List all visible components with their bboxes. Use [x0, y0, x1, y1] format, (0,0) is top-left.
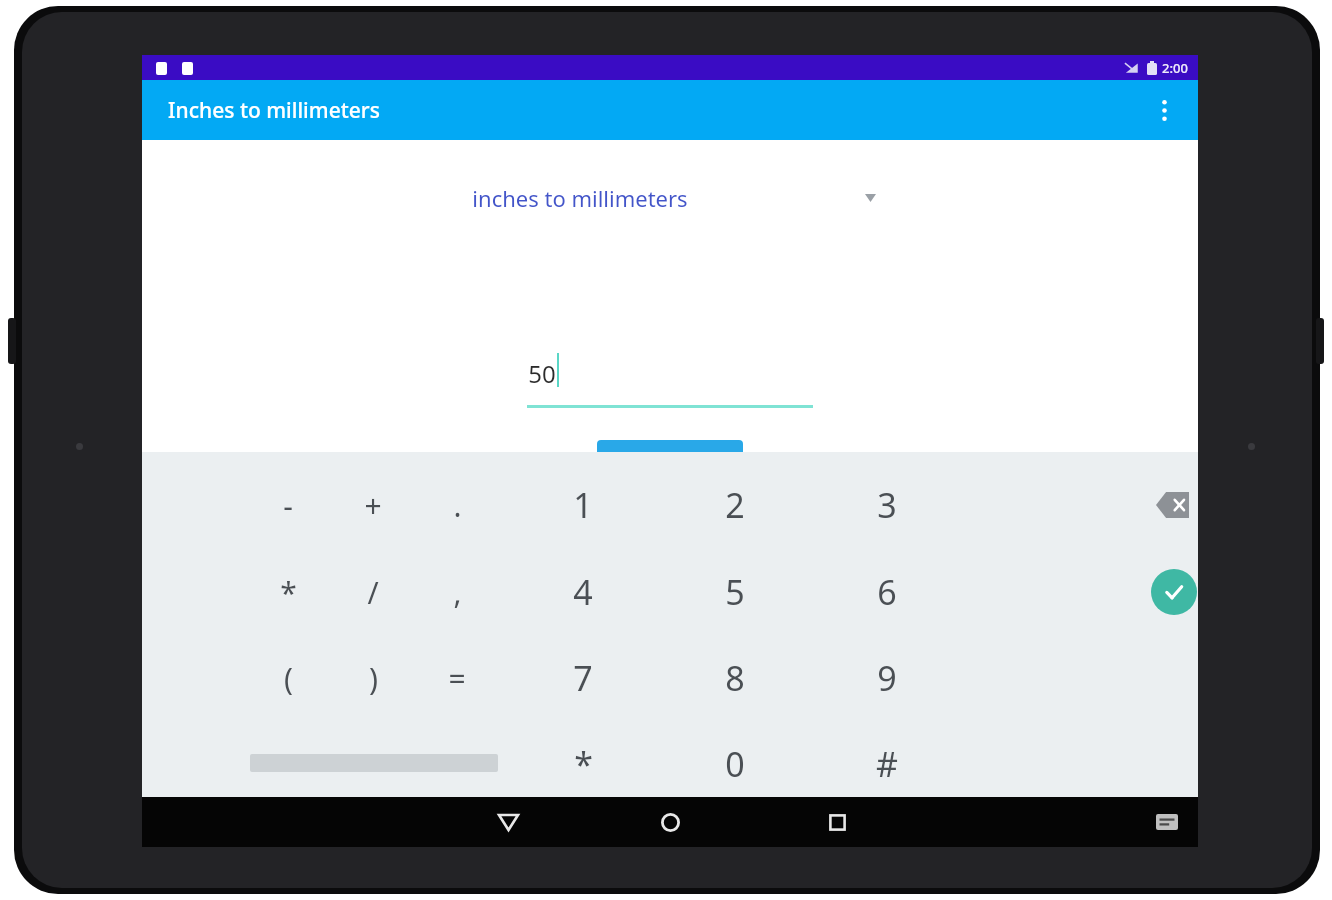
button[interactable]: - — [246, 472, 330, 538]
staticText: 7 — [573, 655, 593, 701]
button[interactable]: 5 — [693, 559, 777, 625]
button[interactable]: 0 — [693, 731, 777, 797]
staticText: 3 — [877, 482, 897, 528]
button[interactable]: ) — [331, 645, 415, 711]
staticText: * — [574, 741, 593, 787]
button[interactable]: 7 — [541, 645, 625, 711]
button[interactable]: # — [845, 731, 929, 797]
button[interactable]: 4 — [541, 559, 625, 625]
button[interactable]: 6 — [845, 559, 929, 625]
button[interactable]: Space — [250, 737, 498, 789]
button[interactable]: More options — [1140, 86, 1188, 134]
staticText: 9 — [877, 655, 897, 701]
staticText: 4 — [573, 569, 593, 615]
button[interactable]: 3 — [845, 472, 929, 538]
staticText: ) — [369, 658, 378, 699]
button[interactable]: Back — [472, 797, 544, 847]
staticText: 6 — [877, 569, 897, 615]
button[interactable]: + — [331, 472, 415, 538]
staticText: 2 — [725, 482, 745, 528]
button[interactable]: * — [541, 731, 625, 797]
staticText: Inches to millimeters — [168, 96, 380, 125]
staticText: = — [448, 658, 466, 699]
button[interactable]: * — [246, 559, 330, 625]
staticText: ( — [284, 658, 293, 699]
staticText: 1 — [573, 482, 593, 528]
button[interactable]: Switch keyboard — [1137, 797, 1197, 847]
staticText: 2:00 — [1162, 59, 1188, 77]
staticText: * — [280, 572, 297, 613]
staticText: 1270 millimeters — [588, 512, 753, 541]
button[interactable]: , — [415, 559, 499, 625]
staticText: 50 — [528, 357, 556, 390]
staticText: inches to millimeters — [472, 183, 688, 213]
staticText: # — [876, 741, 898, 787]
staticText: 8 — [725, 655, 745, 701]
staticText: , — [453, 572, 462, 613]
button[interactable]: = — [415, 645, 499, 711]
button[interactable]: 1 — [541, 472, 625, 538]
staticText: - — [283, 485, 293, 526]
button[interactable]: ( — [246, 645, 330, 711]
staticText: CALCULATE — [626, 450, 715, 470]
button[interactable]: inches to millimeters — [460, 176, 880, 220]
button[interactable]: . — [415, 472, 499, 538]
staticText: 0 — [725, 741, 745, 787]
button[interactable]: Recents — [801, 797, 873, 847]
staticText: 5 — [725, 569, 745, 615]
button[interactable]: 8 — [693, 645, 777, 711]
button[interactable]: Done — [1132, 559, 1216, 625]
button[interactable]: Backspace — [1132, 472, 1216, 538]
staticText: . — [453, 485, 462, 526]
button[interactable]: 9 — [845, 645, 929, 711]
button[interactable]: / — [331, 559, 415, 625]
button[interactable]: CALCULATE — [597, 440, 743, 480]
button[interactable]: Home — [634, 797, 706, 847]
staticText: + — [364, 485, 382, 526]
staticText: / — [367, 572, 379, 613]
button[interactable]: 2 — [693, 472, 777, 538]
